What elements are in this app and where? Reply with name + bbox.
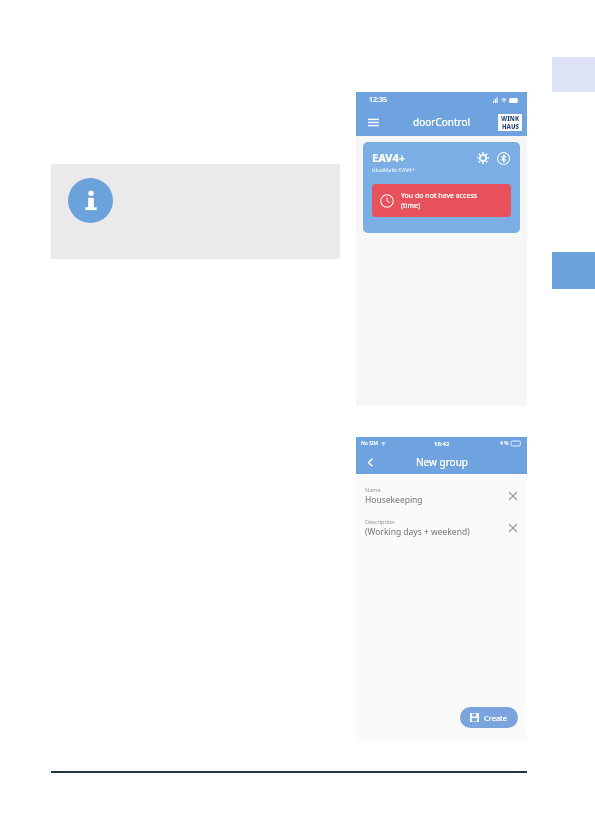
staticText: Housekeeping bbox=[365, 494, 423, 506]
staticText: blueMatic EAV4+ bbox=[372, 166, 415, 173]
staticText: Create bbox=[484, 713, 508, 723]
button[interactable]: Description bbox=[356, 515, 527, 541]
button[interactable]: Clear Name bbox=[505, 488, 521, 504]
staticText: You do not have access bbox=[401, 191, 478, 201]
staticText: (Working days + weekend) bbox=[365, 526, 470, 538]
staticText: 16:42 bbox=[434, 440, 450, 448]
button[interactable]: Clear Description bbox=[505, 520, 521, 536]
staticText: doorControl bbox=[413, 115, 471, 129]
button[interactable]: You do not have access bbox=[372, 184, 511, 217]
button[interactable]: Back bbox=[362, 454, 378, 470]
button[interactable]: Settings bbox=[475, 150, 491, 166]
staticText: Name bbox=[365, 486, 381, 493]
staticText: (time) bbox=[401, 201, 421, 211]
staticText: New group bbox=[416, 455, 468, 469]
button[interactable]: EAV4+ bbox=[363, 142, 520, 233]
button[interactable]: Name bbox=[356, 483, 527, 509]
staticText: 12:35 bbox=[369, 95, 387, 105]
button[interactable]: Create bbox=[460, 707, 518, 728]
staticText: WINK bbox=[501, 115, 520, 123]
staticText: Description bbox=[365, 518, 395, 525]
button[interactable]: Winkhaus bbox=[498, 114, 522, 131]
staticText: HAUS bbox=[502, 123, 519, 131]
button[interactable]: Menu bbox=[364, 113, 382, 131]
button[interactable]: Bluetooth bbox=[495, 150, 511, 166]
staticText: EAV4+ bbox=[372, 150, 406, 165]
staticText: No SIM bbox=[361, 440, 379, 447]
staticText: 4 % bbox=[500, 440, 509, 447]
